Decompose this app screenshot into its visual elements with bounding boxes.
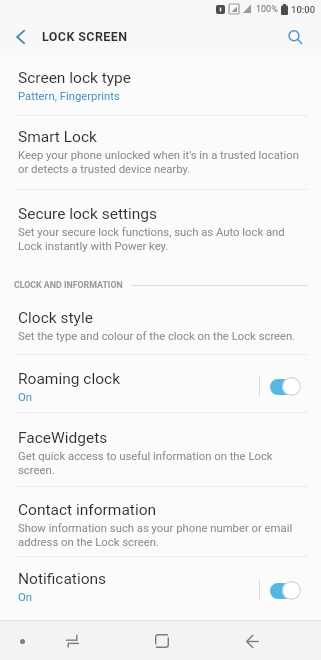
button[interactable]: Contact information (0, 487, 321, 556)
staticText: LOCK SCREEN (42, 29, 128, 44)
button[interactable]: Clock style (0, 293, 321, 354)
staticText: 100% (256, 4, 278, 15)
button[interactable] (283, 24, 309, 50)
staticText: FaceWidgets (18, 429, 108, 447)
staticText: Set the type and colour of the clock on … (18, 330, 296, 343)
button[interactable]: FaceWidgets (0, 413, 321, 486)
button[interactable]: Secure lock settings (0, 190, 321, 262)
button[interactable] (59, 628, 85, 654)
staticText: Show information such as your phone numb… (18, 522, 293, 548)
staticText: Get quick access to useful information o… (18, 450, 273, 476)
button[interactable]: Smart Lock (0, 116, 321, 189)
button[interactable] (239, 628, 265, 654)
staticText: On (18, 591, 33, 604)
staticText: Set your secure lock functions, such as … (18, 226, 285, 252)
button[interactable]: Roaming clock (0, 355, 321, 412)
button[interactable] (149, 628, 175, 654)
staticText: Screen lock type (18, 69, 132, 87)
staticText: On (18, 391, 33, 404)
staticText: Smart Lock (18, 128, 97, 146)
staticText: Keep your phone unlocked when it's in a … (18, 149, 299, 175)
staticText: Secure lock settings (18, 205, 158, 223)
button[interactable] (8, 24, 34, 50)
button[interactable]: Screen lock type (0, 55, 321, 115)
staticText: Notifications (18, 570, 107, 588)
staticText: Clock style (18, 309, 93, 327)
staticText: Roaming clock (18, 370, 120, 388)
button[interactable] (13, 632, 31, 650)
staticText: Pattern, Fingerprints (18, 90, 120, 103)
staticText: Contact information (18, 501, 157, 519)
staticText: CLOCK AND INFORMATION (14, 280, 123, 290)
button[interactable]: Notifications (0, 557, 321, 620)
staticText: 10:00 (291, 4, 316, 15)
